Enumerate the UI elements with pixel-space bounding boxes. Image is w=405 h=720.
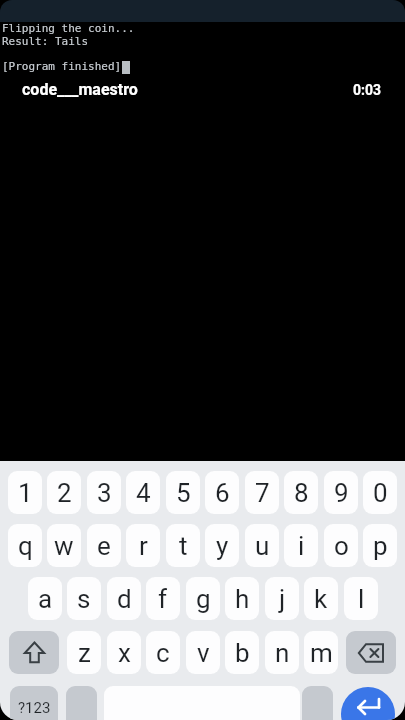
staticText: o <box>334 531 349 561</box>
button[interactable]: n <box>265 631 299 674</box>
staticText: ?123 <box>18 699 51 717</box>
staticText: c <box>156 638 170 668</box>
staticText: k <box>314 584 328 614</box>
button[interactable]: 5 <box>166 471 200 514</box>
staticText: f <box>158 584 168 614</box>
staticText: Result: Tails <box>2 35 89 48</box>
staticText: x <box>118 638 131 668</box>
staticText: v <box>197 638 210 668</box>
button[interactable]: o <box>324 524 358 567</box>
button[interactable]: x <box>107 631 141 674</box>
staticText: j <box>279 584 286 614</box>
staticText: z <box>78 638 91 668</box>
staticText: m <box>310 638 333 668</box>
button[interactable]: e <box>87 524 121 567</box>
button[interactable]: h <box>225 577 259 620</box>
button[interactable]: z <box>67 631 101 674</box>
button[interactable]: 6 <box>205 471 239 514</box>
button[interactable]: t <box>166 524 200 567</box>
staticText: 8 <box>294 478 309 508</box>
staticText: 7 <box>255 478 270 508</box>
staticText: w <box>54 531 74 561</box>
button[interactable]: u <box>245 524 279 567</box>
staticText: [Program finished] <box>2 60 122 73</box>
button[interactable]: 3 <box>87 471 121 514</box>
staticText: e <box>97 531 111 561</box>
staticText: y <box>216 531 229 561</box>
button[interactable]: s <box>67 577 101 620</box>
staticText: code___maestro <box>22 80 138 99</box>
button[interactable] <box>341 687 395 720</box>
staticText: 3 <box>97 478 112 508</box>
staticText: a <box>38 584 53 614</box>
button[interactable]: 7 <box>245 471 279 514</box>
button[interactable]: w <box>47 524 81 567</box>
staticText: l <box>358 584 365 614</box>
button[interactable]: 9 <box>324 471 358 514</box>
button[interactable]: y <box>205 524 239 567</box>
staticText: u <box>255 531 270 561</box>
button[interactable]: b <box>225 631 259 674</box>
staticText: 1 <box>18 478 33 508</box>
button[interactable]: ?123 <box>10 686 58 720</box>
button[interactable]: r <box>126 524 160 567</box>
staticText: 0:03 <box>353 82 382 98</box>
staticText: 2 <box>57 478 72 508</box>
button[interactable]: 0 <box>363 471 397 514</box>
staticText: b <box>235 638 250 668</box>
button[interactable]: 2 <box>47 471 81 514</box>
staticText: g <box>196 584 211 614</box>
button[interactable]: 4 <box>126 471 160 514</box>
staticText: q <box>18 531 33 561</box>
button[interactable]: a <box>28 577 62 620</box>
staticText: t <box>179 531 188 561</box>
button[interactable]: v <box>186 631 220 674</box>
staticText: 9 <box>334 478 349 508</box>
staticText: r <box>139 531 148 561</box>
button[interactable]: 8 <box>284 471 318 514</box>
button[interactable]: 1 <box>8 471 42 514</box>
staticText: s <box>77 584 91 614</box>
button[interactable]: j <box>265 577 299 620</box>
button[interactable] <box>346 631 396 674</box>
button[interactable]: i <box>284 524 318 567</box>
button[interactable]: q <box>8 524 42 567</box>
staticText: i <box>298 531 305 561</box>
staticText: d <box>117 584 132 614</box>
button[interactable] <box>9 631 59 674</box>
staticText: h <box>235 584 250 614</box>
staticText: p <box>373 531 388 561</box>
staticText: 5 <box>176 478 191 508</box>
button[interactable]: c <box>146 631 180 674</box>
button[interactable]: p <box>363 524 397 567</box>
staticText: n <box>275 638 290 668</box>
button[interactable]: m <box>304 631 338 674</box>
staticText: 6 <box>215 478 230 508</box>
button[interactable]: k <box>304 577 338 620</box>
staticText: Flipping the coin... <box>2 22 135 35</box>
button[interactable]: f <box>146 577 180 620</box>
button[interactable]: , <box>66 686 97 720</box>
staticText: 0 <box>373 478 388 508</box>
button[interactable]: g <box>186 577 220 620</box>
staticText: 4 <box>136 478 151 508</box>
button[interactable]: . <box>302 686 333 720</box>
button[interactable]: l <box>344 577 378 620</box>
button[interactable]: d <box>107 577 141 620</box>
